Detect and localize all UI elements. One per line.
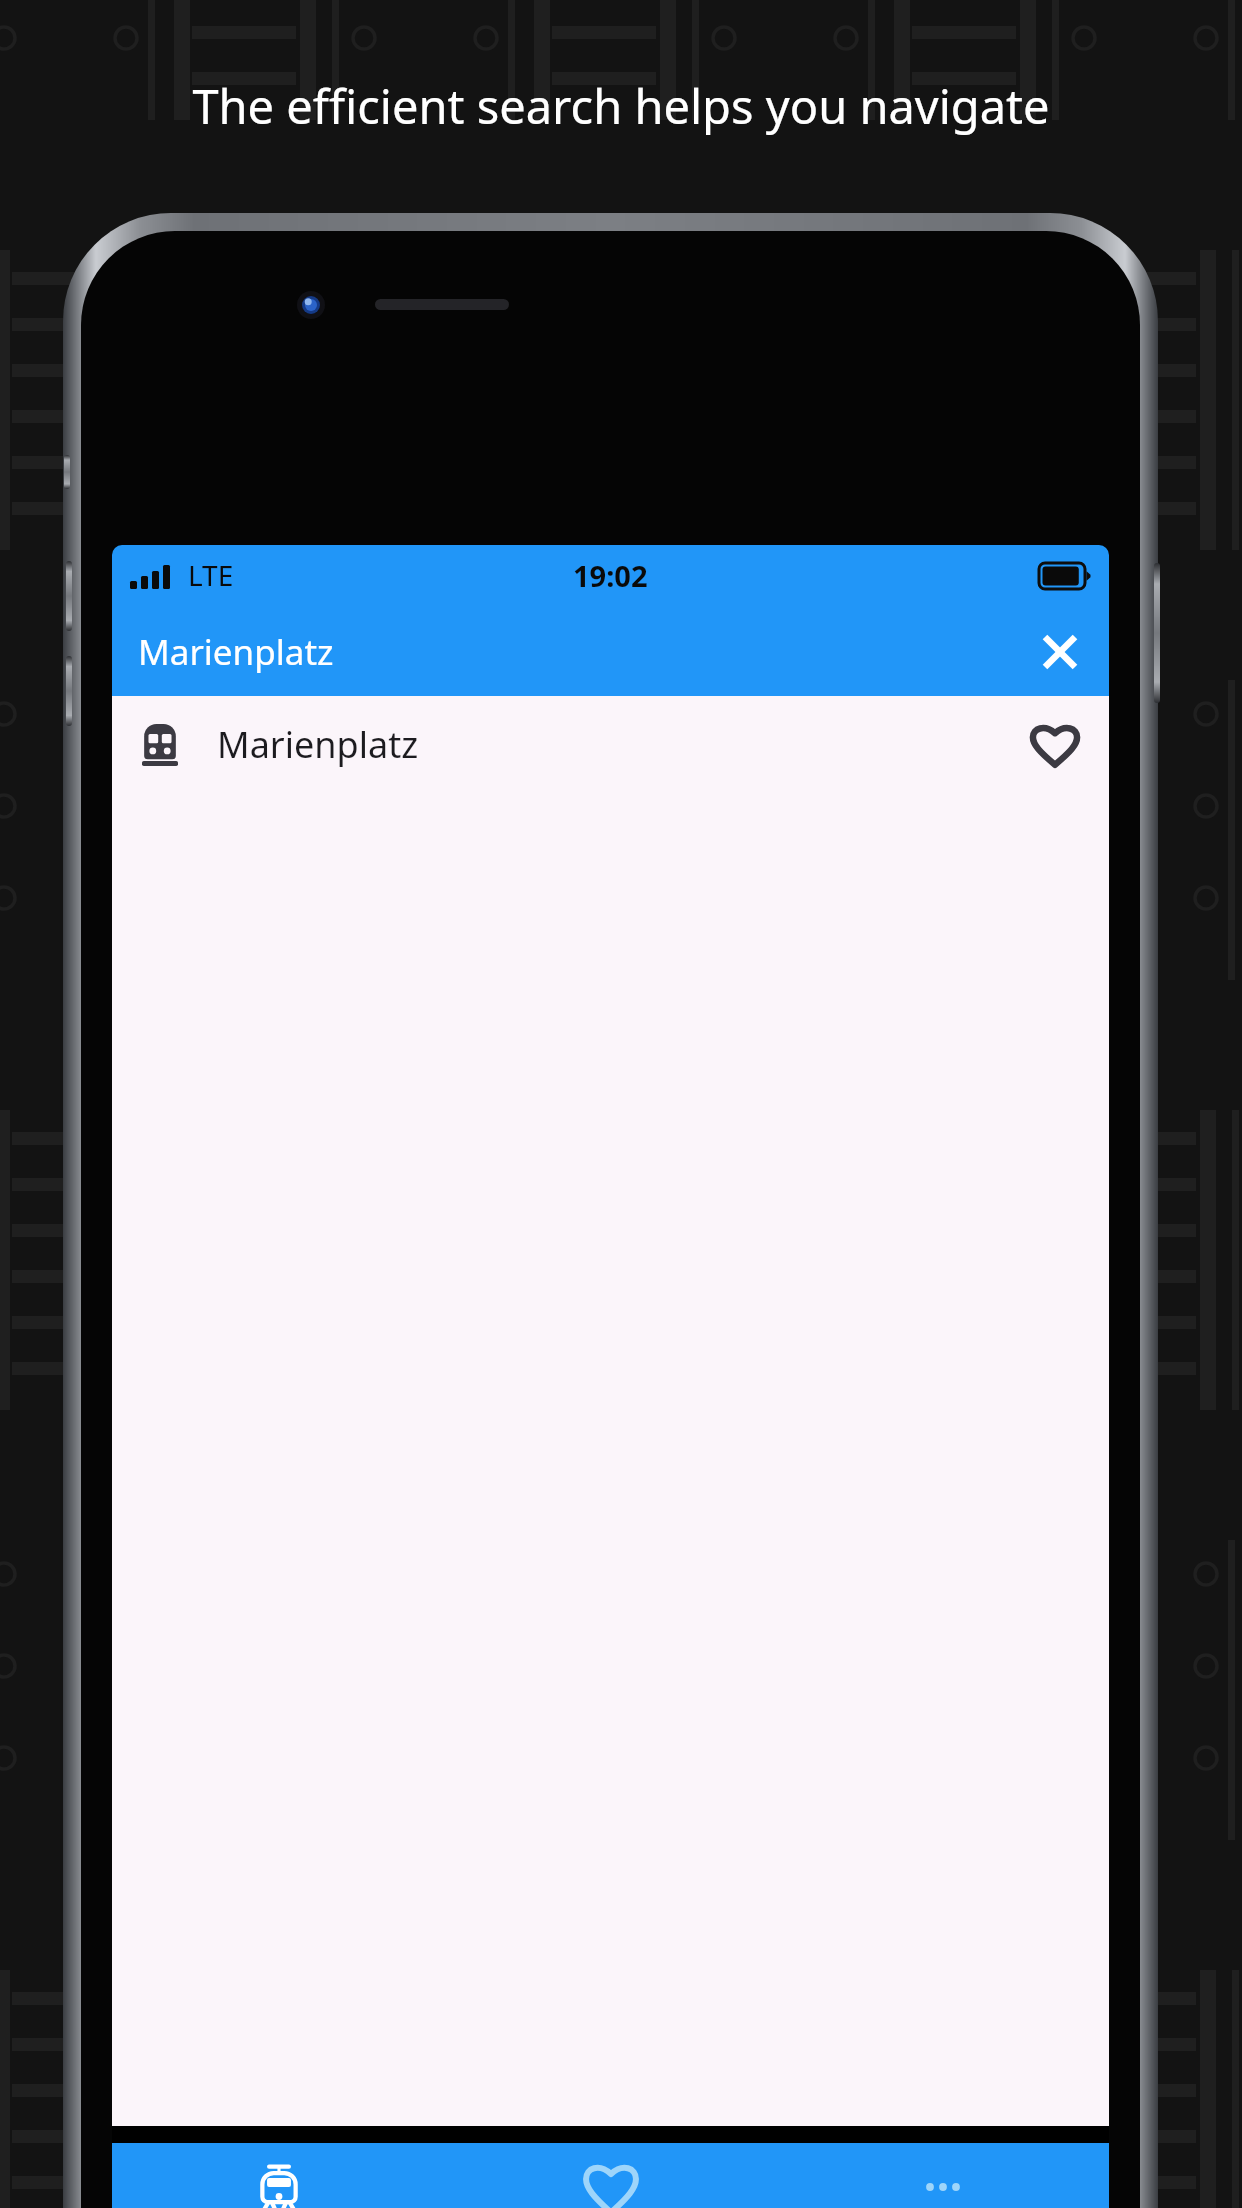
staticText: Marienplatz <box>138 628 334 676</box>
staticText: The efficient search helps you navigate <box>0 74 1242 138</box>
staticText: 19:02 <box>573 556 648 595</box>
button[interactable]: Stations <box>112 2143 445 2208</box>
staticText: Marienplatz <box>217 720 419 769</box>
button[interactable]: Marienplatz <box>112 696 1109 793</box>
staticText: LTE <box>188 556 234 594</box>
button[interactable]: Favorites <box>445 2143 777 2208</box>
button[interactable]: Clear search <box>1029 621 1091 683</box>
button[interactable]: Add to favorites <box>1016 706 1094 784</box>
button[interactable]: More <box>777 2143 1109 2208</box>
button[interactable]: Marienplatz <box>112 607 1109 696</box>
